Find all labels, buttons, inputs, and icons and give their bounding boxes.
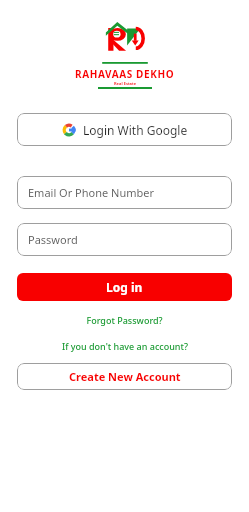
button[interactable]: Forgot Password? — [82, 310, 167, 330]
button[interactable]: Log in — [17, 273, 232, 301]
staticText: Real Estate — [114, 81, 137, 86]
staticText: If you don't have an account? — [62, 340, 188, 352]
button[interactable]: Login With Google — [17, 113, 232, 146]
staticText: Password — [28, 232, 78, 247]
button[interactable]: Password — [17, 223, 232, 256]
button[interactable]: Create New Account — [17, 363, 232, 390]
staticText: Email Or Phone Number — [28, 185, 155, 200]
button[interactable]: Email Or Phone Number — [17, 176, 232, 209]
staticText: Create New Account — [69, 369, 181, 384]
staticText: Login With Google — [83, 122, 188, 138]
staticText: Forgot Password? — [86, 314, 163, 326]
staticText: RAHAVAAS DEKHO — [75, 67, 175, 81]
staticText: Log in — [106, 279, 143, 295]
